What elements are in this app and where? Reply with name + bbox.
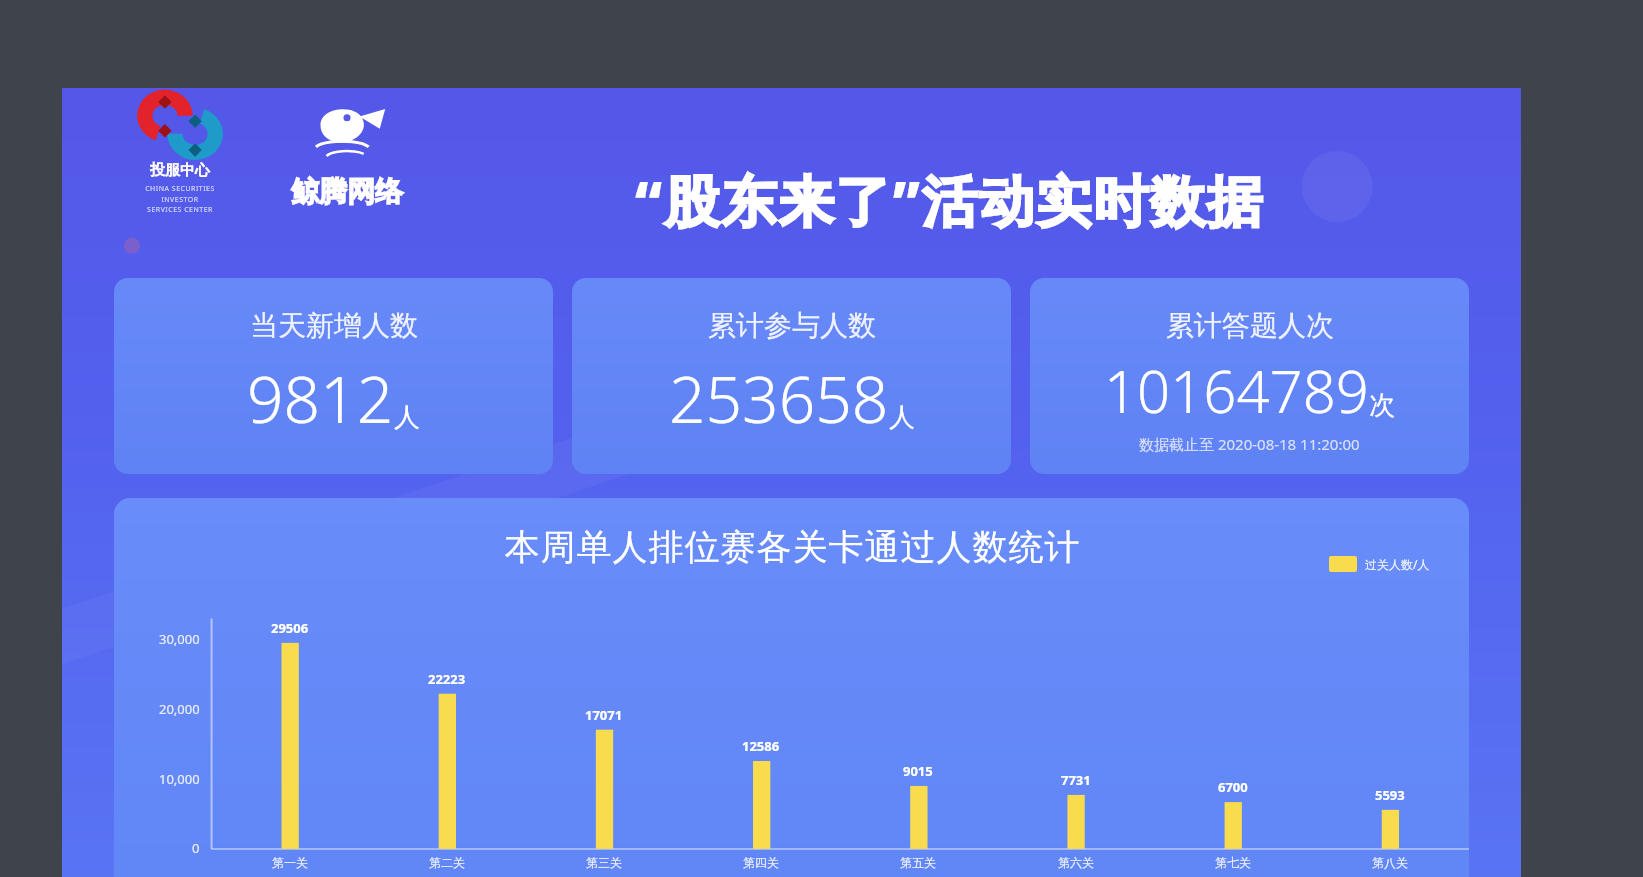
other: Jingteng Network whale logo [308,104,386,166]
staticText: 29506 [271,619,309,637]
button[interactable]: 过关人数/人 [1329,556,1430,572]
staticText: 第四关 [743,855,779,870]
staticText: 22223 [428,670,466,688]
staticText: 9015 [903,762,933,780]
button[interactable]: 累计答题人次 [1030,278,1469,474]
staticText: 5593 [1375,786,1405,804]
staticText: 人 [889,401,915,434]
button[interactable]: 累计参与人数 [572,278,1011,474]
staticText: 累计答题人次 [1166,308,1334,343]
staticText: 累计参与人数 [708,308,876,343]
staticText: 过关人数/人 [1365,556,1430,572]
staticText: CHINA SECURITIES INVESTOR SERVICES CENTE… [145,184,215,214]
staticText: 第一关 [272,855,308,870]
button[interactable]: 当天新增人数 [114,278,553,474]
staticText: 10,000 [159,770,200,788]
staticText: 第二关 [429,855,465,870]
staticText: 第六关 [1058,855,1094,870]
staticText: 次 [1369,389,1395,422]
staticText: 数据截止至 2020-08-18 11:20:00 [1139,434,1360,454]
staticText: 17071 [585,706,623,724]
staticText: 第三关 [586,855,622,870]
staticText: 本周单人排位赛各关卡通过人数统计 [504,525,1080,569]
staticText: 鲸腾网络 [291,174,403,209]
staticText: 第八关 [1372,855,1408,870]
staticText: 9812 [247,355,394,442]
staticText: 第五关 [900,855,936,870]
staticText: 人 [394,401,420,434]
staticText: 12586 [742,737,780,755]
staticText: 30,000 [159,630,200,648]
other: China Securities Investor Services Cente… [120,96,240,214]
staticText: 第七关 [1215,855,1251,870]
staticText: 253658 [669,355,889,442]
staticText: 当天新增人数 [250,308,418,343]
staticText: 20,000 [159,700,200,718]
staticText: 投服中心 [150,161,210,180]
staticText: 10164789 [1104,351,1369,430]
staticText: 0 [192,839,200,857]
staticText: 7731 [1061,771,1091,789]
staticText: 6700 [1218,778,1248,796]
staticText: “股东来了”活动实时数据 [635,162,1264,237]
button[interactable]: 本周单人排位赛各关卡通过人数统计 [114,498,1469,877]
